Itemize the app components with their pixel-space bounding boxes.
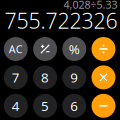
- button[interactable]: %: [62, 37, 86, 61]
- staticText: 6: [70, 97, 78, 115]
- button[interactable]: Multiply: [91, 65, 115, 89]
- staticText: 5: [41, 97, 49, 115]
- button[interactable]: 9: [62, 65, 86, 89]
- staticText: 7: [12, 68, 20, 86]
- staticText: 4: [12, 97, 20, 115]
- button[interactable]: AC: [4, 37, 28, 61]
- button[interactable]: Minus: [91, 94, 115, 118]
- button[interactable]: 8: [33, 65, 57, 89]
- staticText: 4,028÷5.33: [63, 0, 117, 12]
- button[interactable]: 4: [4, 94, 28, 118]
- button[interactable]: Divide: [91, 37, 115, 61]
- staticText: %: [69, 40, 80, 58]
- staticText: AC: [9, 42, 23, 56]
- button[interactable]: Plus or minus: [33, 37, 57, 61]
- button[interactable]: 7: [4, 65, 28, 89]
- staticText: 9: [70, 68, 78, 86]
- button[interactable]: 6: [62, 94, 86, 118]
- staticText: 755.722326: [4, 6, 117, 35]
- staticText: 8: [41, 68, 49, 86]
- button[interactable]: 5: [33, 94, 57, 118]
